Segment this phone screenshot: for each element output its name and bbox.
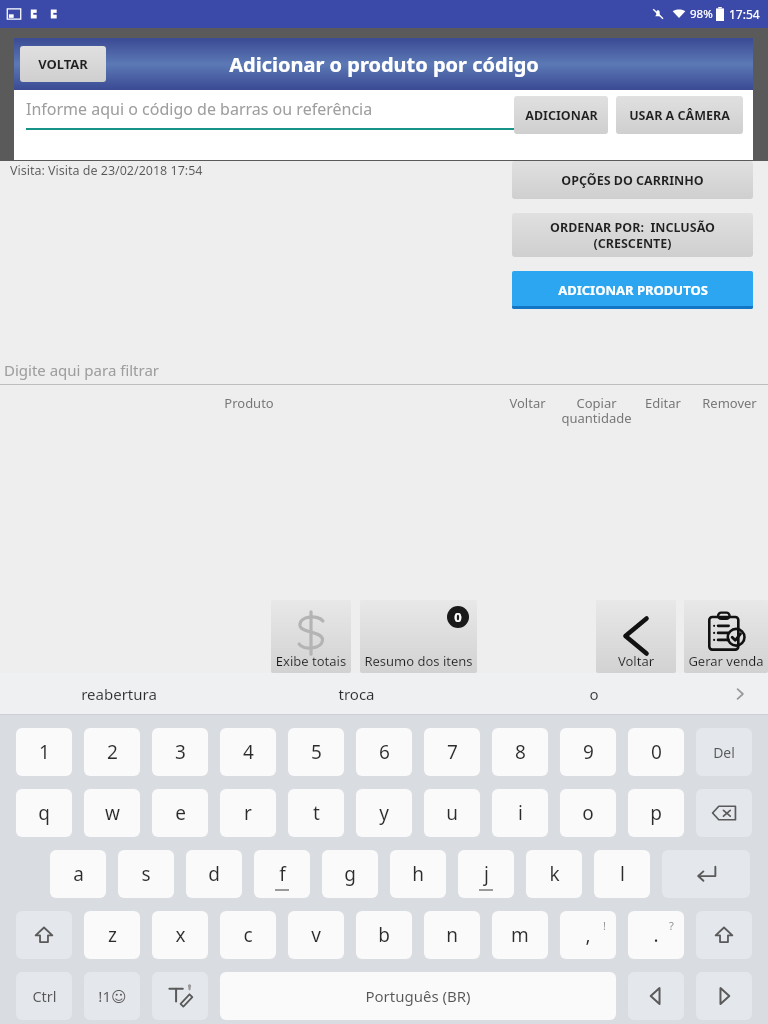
button[interactable]: 6 [356,728,412,776]
staticText: h [412,861,424,887]
staticText: c [243,922,253,948]
button[interactable]: p [628,789,684,837]
button[interactable]: u [424,789,480,837]
button[interactable]: ADICIONAR PRODUTOS [512,271,753,309]
staticText: o [582,800,594,826]
button[interactable] [662,850,750,898]
staticText: 6 [379,739,390,765]
staticText: 2 [107,739,118,765]
button[interactable] [16,911,72,959]
button[interactable]: Português (BR) [220,972,616,1020]
staticText: u [446,800,458,826]
button[interactable]: troca [238,673,475,715]
button[interactable]: reabertura [0,673,238,715]
button[interactable]: 2 [84,728,140,776]
button[interactable]: b [356,911,412,959]
staticText: 4 [243,739,254,765]
button[interactable]: l [594,850,650,898]
button[interactable]: Resumo dos itens [360,600,477,673]
button[interactable]: 9 [560,728,616,776]
button[interactable]: . [628,911,684,959]
button[interactable]: z [84,911,140,959]
staticText: e [175,800,186,826]
button[interactable]: f [254,850,310,898]
button[interactable]: 7 [424,728,480,776]
button[interactable]: w [84,789,140,837]
button[interactable]: x [152,911,208,959]
button[interactable]: OPÇÕES DO CARRINHO [520,167,745,193]
button[interactable]: 0 [628,728,684,776]
staticText: m [511,922,529,948]
staticText: Remover [702,394,757,412]
staticText: Voltar [509,394,546,412]
button[interactable]: g [322,850,378,898]
staticText: 98% [690,6,713,22]
button[interactable]: y [356,789,412,837]
button[interactable]: c [220,911,276,959]
staticText: VOLTAR [38,55,88,73]
button[interactable]: Voltar [596,600,676,673]
button[interactable] [696,789,752,837]
button[interactable]: 4 [220,728,276,776]
staticText: ? [669,918,674,933]
button[interactable] [152,972,208,1020]
button[interactable]: o [560,789,616,837]
staticText: , [585,922,591,948]
button[interactable]: d [186,850,242,898]
button[interactable]: v [288,911,344,959]
staticText: Ctrl [32,986,57,1006]
staticText: Voltar [596,652,676,670]
staticText: a [73,861,84,887]
button[interactable]: VOLTAR [28,52,98,76]
staticText: r [244,800,252,826]
button[interactable]: k [526,850,582,898]
staticText: 0 [651,739,662,765]
button[interactable]: n [424,911,480,959]
button[interactable]: USAR A CÂMERA [624,102,735,128]
button[interactable]: More suggestions [712,673,768,715]
staticText: Português (BR) [365,986,471,1006]
button[interactable]: t [288,789,344,837]
button[interactable]: Del [696,728,752,776]
button[interactable]: ADICIONAR [522,102,600,128]
button[interactable] [628,972,684,1020]
staticText: Resumo dos itens [360,652,477,670]
staticText: o [589,684,599,704]
button[interactable]: !1☺ [84,972,140,1020]
staticText: Adicionar o produto por código [229,51,539,78]
button[interactable]: Gerar venda [684,600,768,673]
button[interactable]: e [152,789,208,837]
staticText: l [620,861,625,887]
button[interactable]: r [220,789,276,837]
staticText: Visita: Visita de 23/02/2018 17:54 [10,162,203,179]
staticText: 0 [454,608,462,626]
button[interactable] [696,972,752,1020]
button[interactable]: 1 [16,728,72,776]
button[interactable]: 5 [288,728,344,776]
button[interactable]: , [560,911,616,959]
staticText: 3 [175,739,186,765]
staticText: k [549,861,560,887]
staticText: f [279,861,286,887]
staticText: Digite aqui para filtrar [4,360,160,380]
button[interactable]: 8 [492,728,548,776]
button[interactable]: s [118,850,174,898]
staticText: s [141,861,151,887]
staticText: 17:54 [729,6,760,22]
button[interactable]: i [492,789,548,837]
button[interactable]: q [16,789,72,837]
button[interactable]: m [492,911,548,959]
staticText: n [446,922,458,948]
button[interactable]: j [458,850,514,898]
button[interactable]: h [390,850,446,898]
button[interactable]: Exibe totais [271,600,351,673]
button[interactable] [696,911,752,959]
button[interactable]: 3 [152,728,208,776]
staticText: ! [603,918,606,933]
button[interactable]: ORDENAR POR: INCLUSÃO (CRESCENTE) [520,219,745,251]
staticText: j [484,861,489,887]
button[interactable]: o [475,673,712,715]
button[interactable]: a [50,850,106,898]
staticText: ADICIONAR PRODUTOS [558,281,708,299]
button[interactable]: Ctrl [16,972,72,1020]
